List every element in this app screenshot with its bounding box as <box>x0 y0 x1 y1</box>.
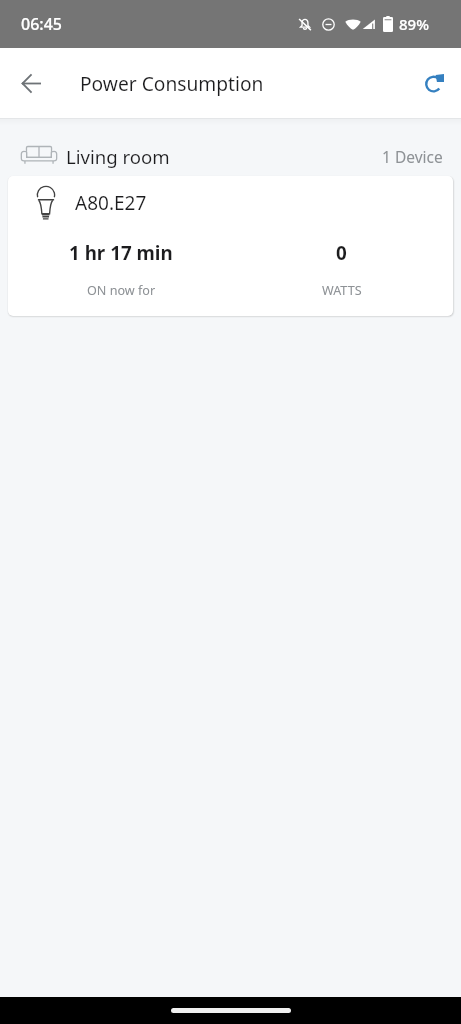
staticText: Power Consumption <box>80 70 264 96</box>
staticText: 0 <box>336 240 347 266</box>
staticText: 1 Device <box>382 146 443 167</box>
staticText: Living room <box>66 144 170 169</box>
staticText: 89% <box>399 14 429 34</box>
button[interactable]: A80.E27 <box>8 176 453 316</box>
staticText: 06:45 <box>21 13 62 35</box>
staticText: 1 hr 17 min <box>69 240 173 266</box>
staticText: ON now for <box>87 282 156 299</box>
staticText: WATTS <box>322 282 362 299</box>
button[interactable]: Refresh <box>410 59 458 107</box>
staticText: A80.E27 <box>75 190 147 216</box>
button[interactable]: Back <box>7 59 56 108</box>
button[interactable]: Living room <box>0 143 461 169</box>
